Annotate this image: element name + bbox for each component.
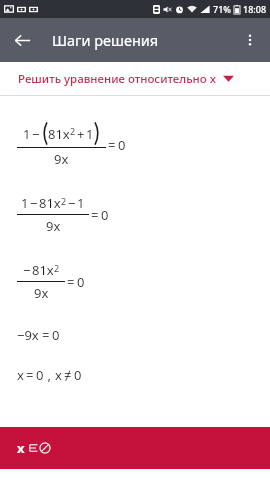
staticText: 1	[23, 125, 31, 143]
staticText: 2	[61, 195, 67, 207]
button[interactable]: Back	[6, 24, 38, 56]
staticText: 81x	[39, 194, 61, 212]
staticText: =	[108, 136, 116, 154]
staticText: 1	[86, 125, 94, 143]
button[interactable]: More options	[234, 24, 266, 56]
staticText: =	[67, 273, 75, 291]
staticText: =	[26, 366, 34, 384]
staticText: ,	[44, 366, 55, 384]
staticText: −	[68, 194, 76, 212]
staticText: x	[17, 366, 24, 384]
staticText: 9x	[34, 284, 49, 302]
staticText: 2	[54, 262, 60, 274]
staticText: Шаги решения	[52, 30, 159, 50]
staticText: 9x	[54, 150, 69, 168]
staticText: 81x	[48, 125, 70, 143]
staticText: =	[91, 206, 99, 224]
staticText: 1	[21, 194, 29, 212]
staticText: 2	[70, 125, 76, 137]
staticText: 0	[118, 136, 126, 154]
staticText: Решить уравнение относительно x	[18, 71, 216, 87]
staticText: 1	[77, 194, 85, 212]
staticText: 0	[52, 326, 60, 344]
staticText: x	[17, 439, 25, 457]
staticText: 71%	[213, 3, 231, 15]
staticText: 0	[36, 366, 44, 384]
staticText: −	[30, 194, 38, 212]
staticText: x	[55, 366, 62, 384]
staticText: −	[23, 261, 31, 279]
staticText: 81x	[32, 261, 54, 279]
staticText: −	[32, 125, 40, 143]
staticText: 0	[74, 366, 82, 384]
staticText: 0	[101, 206, 109, 224]
staticText: ≠	[64, 366, 72, 384]
staticText: −9x	[17, 326, 39, 344]
staticText: +	[77, 125, 85, 143]
button[interactable]: x	[0, 427, 270, 469]
staticText: =	[42, 326, 50, 344]
staticText: 0	[77, 273, 85, 291]
button[interactable]: Решить уравнение относительно x	[0, 62, 270, 95]
staticText: 18:08	[243, 3, 267, 15]
staticText: 9x	[46, 217, 61, 235]
